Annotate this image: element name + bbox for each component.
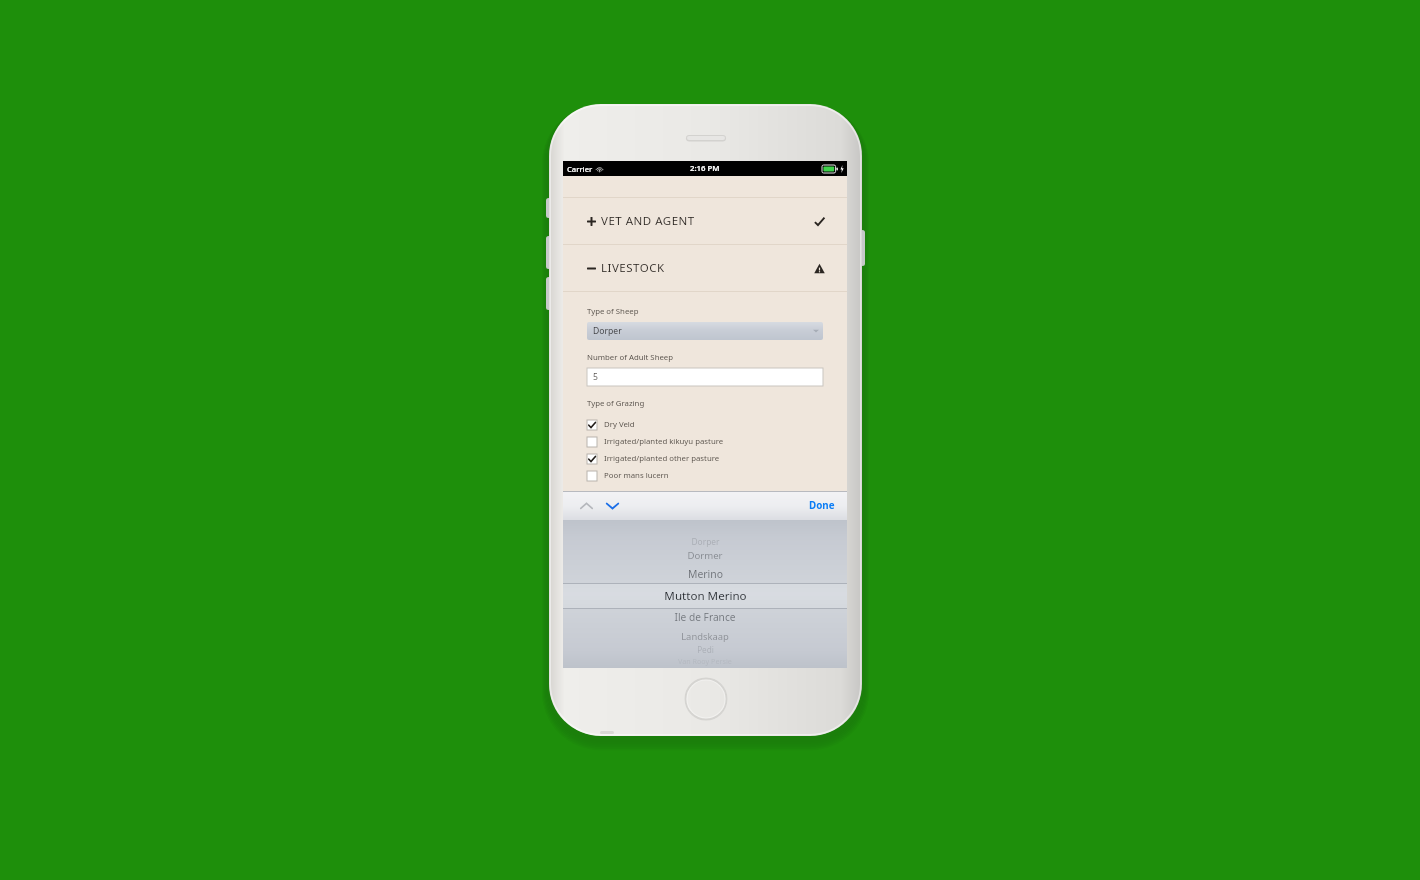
button[interactable]: Next field <box>601 495 623 517</box>
other: Section complete <box>814 216 825 227</box>
button[interactable]: Dry Veld <box>587 416 823 433</box>
button[interactable]: Dormer <box>563 546 847 564</box>
button[interactable]: Dorper <box>587 322 823 340</box>
staticText: Carrier <box>567 164 593 174</box>
staticText: Done <box>809 499 835 512</box>
button[interactable]: LIVESTOCK <box>563 245 847 291</box>
other: Section has warnings <box>814 263 825 274</box>
staticText: Type of Grazing <box>587 398 645 409</box>
button[interactable]: Irrigated/planted other pasture <box>587 450 823 467</box>
button[interactable]: Poor mans lucern <box>587 467 823 484</box>
button[interactable]: Merino <box>563 565 847 583</box>
staticText: Dry Veld <box>604 419 635 430</box>
button[interactable]: Mutton Merino <box>563 587 847 605</box>
staticText: Dorper <box>691 536 720 547</box>
staticText: Merino <box>688 567 723 581</box>
staticText: Irrigated/planted other pasture <box>604 453 720 464</box>
staticText: LIVESTOCK <box>601 260 665 276</box>
staticText: 2:16 PM <box>690 163 720 174</box>
staticText: Pedi <box>697 644 714 655</box>
staticText: Landskaap <box>681 630 729 643</box>
staticText: Van Rooy Persie <box>678 656 732 666</box>
staticText: VET AND AGENT <box>601 213 695 229</box>
button[interactable]: Previous field <box>575 495 597 517</box>
staticText: Ile de France <box>674 610 736 624</box>
button[interactable]: 5 <box>587 368 823 386</box>
staticText: Poor mans lucern <box>604 470 669 481</box>
staticText: Dormer <box>687 549 723 562</box>
staticText: 5 <box>593 371 598 383</box>
button[interactable]: Irrigated/planted kikuyu pasture <box>587 433 823 450</box>
button[interactable]: Landskaap <box>563 627 847 645</box>
button[interactable]: VET AND AGENT <box>563 198 847 244</box>
staticText: Dorper <box>593 325 622 337</box>
staticText: Type of Sheep <box>587 306 639 317</box>
staticText: Irrigated/planted kikuyu pasture <box>604 436 724 447</box>
staticText: Number of Adult Sheep <box>587 352 674 363</box>
button[interactable]: Ile de France <box>563 608 847 626</box>
staticText: Mutton Merino <box>664 588 747 604</box>
button[interactable]: Done <box>797 494 847 517</box>
